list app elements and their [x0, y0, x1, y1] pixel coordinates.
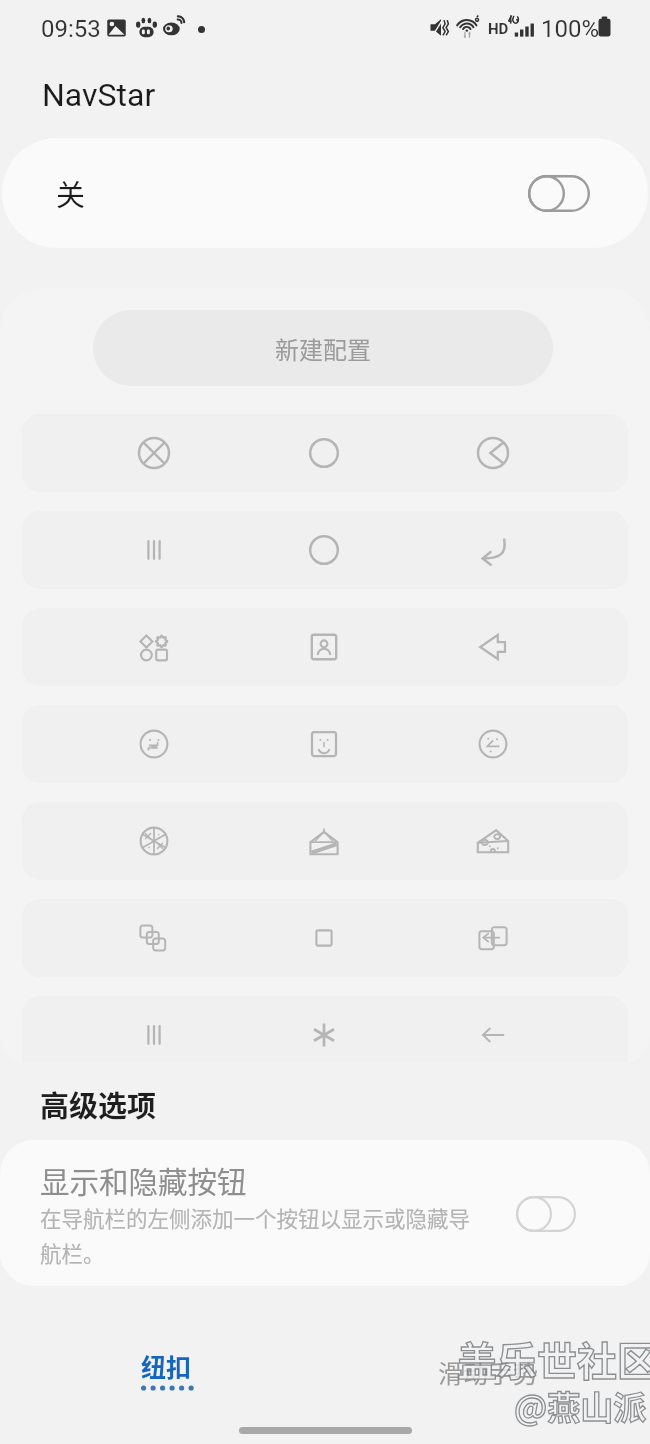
- staticText: 在导航栏的左侧添加一个按钮以显示或隐藏导航栏。: [40, 1202, 477, 1268]
- button[interactable]: 关: [2, 138, 648, 248]
- staticText: NavStar: [42, 76, 156, 114]
- staticText: 盖乐世社区: [457, 1330, 650, 1388]
- staticText: 高级选项: [40, 1083, 157, 1125]
- button[interactable]: 滑动手势: [418, 1344, 548, 1394]
- button[interactable]: Navigation bar layout option: [22, 802, 628, 880]
- button[interactable]: Navigation bar layout option: [22, 608, 628, 686]
- staticText: 滑动手势: [438, 1354, 539, 1390]
- staticText: 纽扣: [141, 1348, 192, 1384]
- button[interactable]: Navigation bar layout option: [22, 414, 628, 492]
- staticText: 显示和隐藏按钮: [40, 1159, 247, 1202]
- button[interactable]: Navigation bar layout option: [22, 705, 628, 783]
- staticText: 盖乐世社区: [457, 1330, 650, 1388]
- button[interactable]: Navigation bar layout option: [22, 511, 628, 589]
- staticText: @燕山派: [514, 1382, 647, 1430]
- staticText: 新建配置: [275, 331, 371, 366]
- button[interactable]: 显示和隐藏按钮: [0, 1140, 650, 1286]
- button[interactable]: 新建配置: [93, 310, 553, 386]
- button[interactable]: Navigation bar layout option: [22, 996, 628, 1063]
- staticText: 09:53: [41, 15, 101, 43]
- button[interactable]: 纽扣: [120, 1348, 210, 1404]
- staticText: HD: [488, 20, 509, 38]
- staticText: 关: [56, 172, 86, 214]
- staticText: 100%: [541, 15, 600, 43]
- button[interactable]: Navigation bar layout option: [22, 899, 628, 977]
- staticText: @燕山派: [514, 1382, 647, 1430]
